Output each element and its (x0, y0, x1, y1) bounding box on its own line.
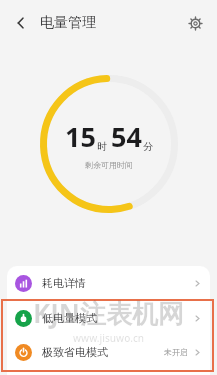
staticText: 15 (65, 118, 96, 155)
button[interactable]: Settings (181, 9, 209, 37)
staticText: 电量管理 (40, 14, 96, 32)
staticText: 未开启 (164, 347, 188, 357)
staticText: 耗电详情 (42, 276, 86, 290)
staticText: 54 (111, 118, 142, 155)
staticText: KJN注表机网 (33, 295, 185, 331)
button[interactable]: 低电量模式 (7, 301, 210, 335)
staticText: 分 (143, 140, 153, 153)
staticText: www.jisuwo.cn (73, 331, 145, 345)
button[interactable]: 耗电详情 (7, 266, 210, 300)
staticText: 极致省电模式 (42, 345, 108, 359)
staticText: 时 (97, 140, 107, 153)
button[interactable]: 极致省电模式 (7, 335, 210, 369)
staticText: 剩余可用时间 (85, 160, 133, 170)
staticText: 低电量模式 (42, 311, 97, 325)
button[interactable]: Back (6, 8, 36, 38)
